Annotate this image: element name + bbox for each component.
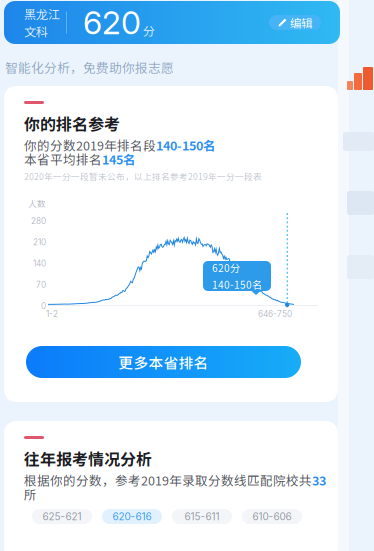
staticText: 往年报考情况分析 <box>24 447 152 470</box>
staticText: 280 <box>31 216 46 226</box>
staticText: 你的分数2019年排名段 <box>24 136 156 154</box>
staticText: 编辑 <box>290 14 312 31</box>
staticText: 33 <box>312 471 326 489</box>
button[interactable]: 615-611 <box>172 509 232 524</box>
button[interactable]: 620-616 <box>102 509 162 524</box>
staticText: 620分 <box>212 260 240 275</box>
staticText: 你的排名参考 <box>24 112 120 135</box>
staticText: 140-150名 <box>212 277 262 292</box>
button[interactable]: 610-606 <box>242 509 302 524</box>
staticText: 210 <box>33 237 46 247</box>
staticText: 2020年一分一段暂未公布，以上排名参考2019年一分一段表 <box>24 170 262 182</box>
staticText: 625-621 <box>42 510 81 523</box>
staticText: 610-606 <box>252 510 291 523</box>
staticText: 646-750 <box>258 309 292 319</box>
staticText: 1-2 <box>46 309 58 319</box>
staticText: 本省平均排名 <box>24 150 102 168</box>
staticText: 140-150名 <box>156 136 216 154</box>
staticText: 140 <box>33 258 46 268</box>
staticText: 145名 <box>102 150 136 168</box>
staticText: 70 <box>36 280 46 290</box>
staticText: 615-611 <box>184 510 219 523</box>
staticText: 智能化分析，免费助你报志愿 <box>5 58 174 76</box>
staticText: 根据你的分数，参考2019年录取分数线匹配院校共 <box>24 471 312 489</box>
button[interactable]: 625-621 <box>32 509 92 524</box>
button[interactable]: 编辑 <box>269 15 321 30</box>
staticText: 更多本省排名 <box>118 351 208 373</box>
staticText: 黑龙江 <box>24 5 60 22</box>
staticText: 分 <box>143 21 155 39</box>
staticText: 0 <box>41 301 46 311</box>
button[interactable]: 更多本省排名 <box>26 346 301 378</box>
staticText: 所 <box>24 485 37 503</box>
staticText: 文科 <box>24 22 48 40</box>
staticText: 620 <box>83 3 141 42</box>
staticText: 人数 <box>28 197 46 209</box>
staticText: 620-616 <box>112 510 151 523</box>
